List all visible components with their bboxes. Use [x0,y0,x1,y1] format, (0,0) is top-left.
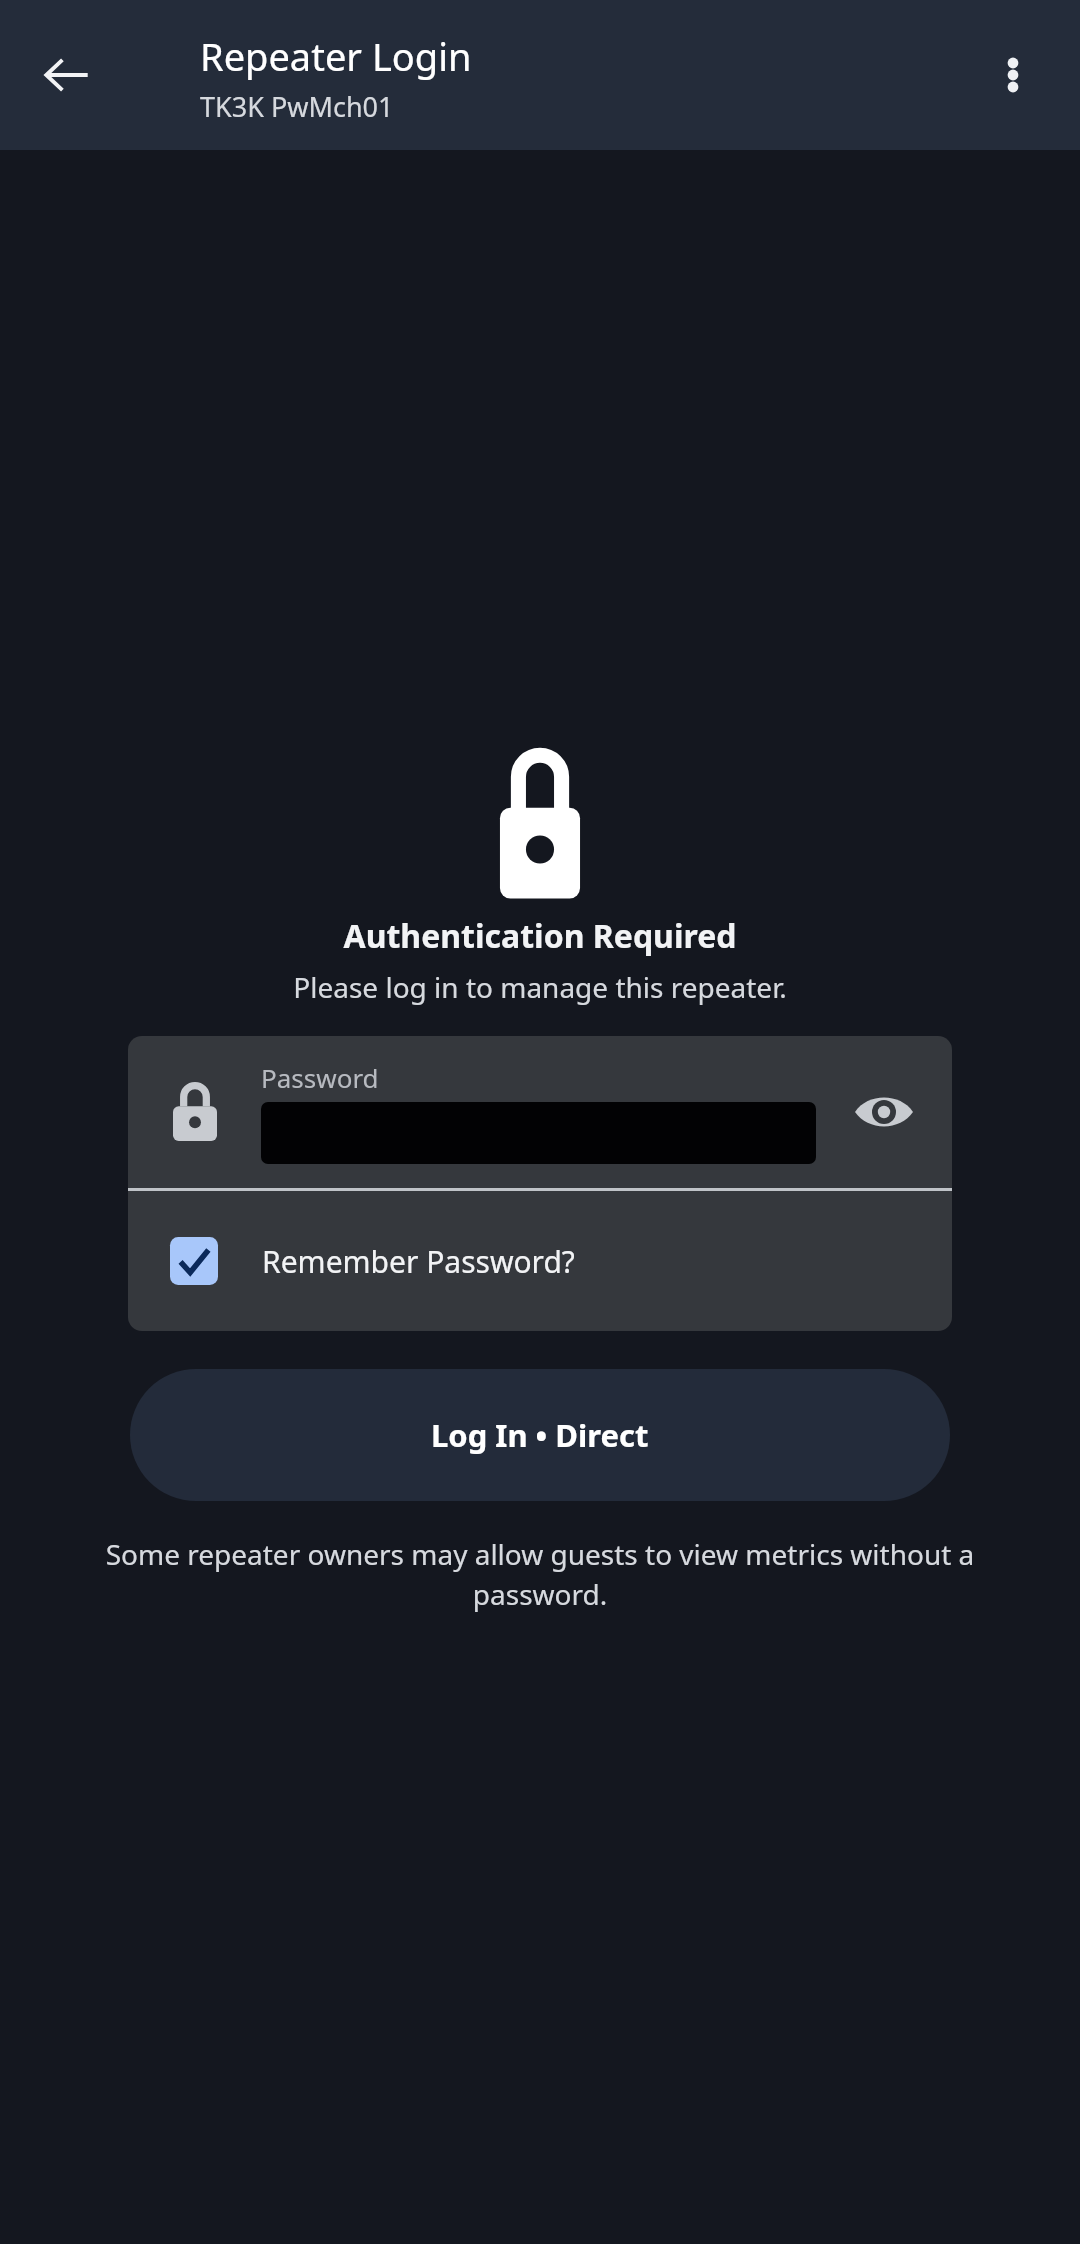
staticText: Log In • Direct [431,1414,649,1456]
button[interactable]: Remember Password? [128,1191,952,1331]
staticText: Some repeater owners may allow guests to… [52,1535,1028,1614]
staticText: Authentication Required [0,914,1080,958]
button[interactable]: Back [20,28,114,122]
staticText: Remember Password? [262,1241,575,1282]
button[interactable]: Log In • Direct [130,1369,950,1501]
button[interactable]: Show password [816,1036,952,1188]
staticText: Repeater Login [200,30,472,82]
staticText: Password [261,1060,379,1095]
staticText: TK3K PwMch01 [200,88,394,125]
staticText: Please log in to manage this repeater. [0,968,1080,1006]
button[interactable]: More options [966,28,1060,122]
button[interactable]: Password [128,1036,952,1188]
